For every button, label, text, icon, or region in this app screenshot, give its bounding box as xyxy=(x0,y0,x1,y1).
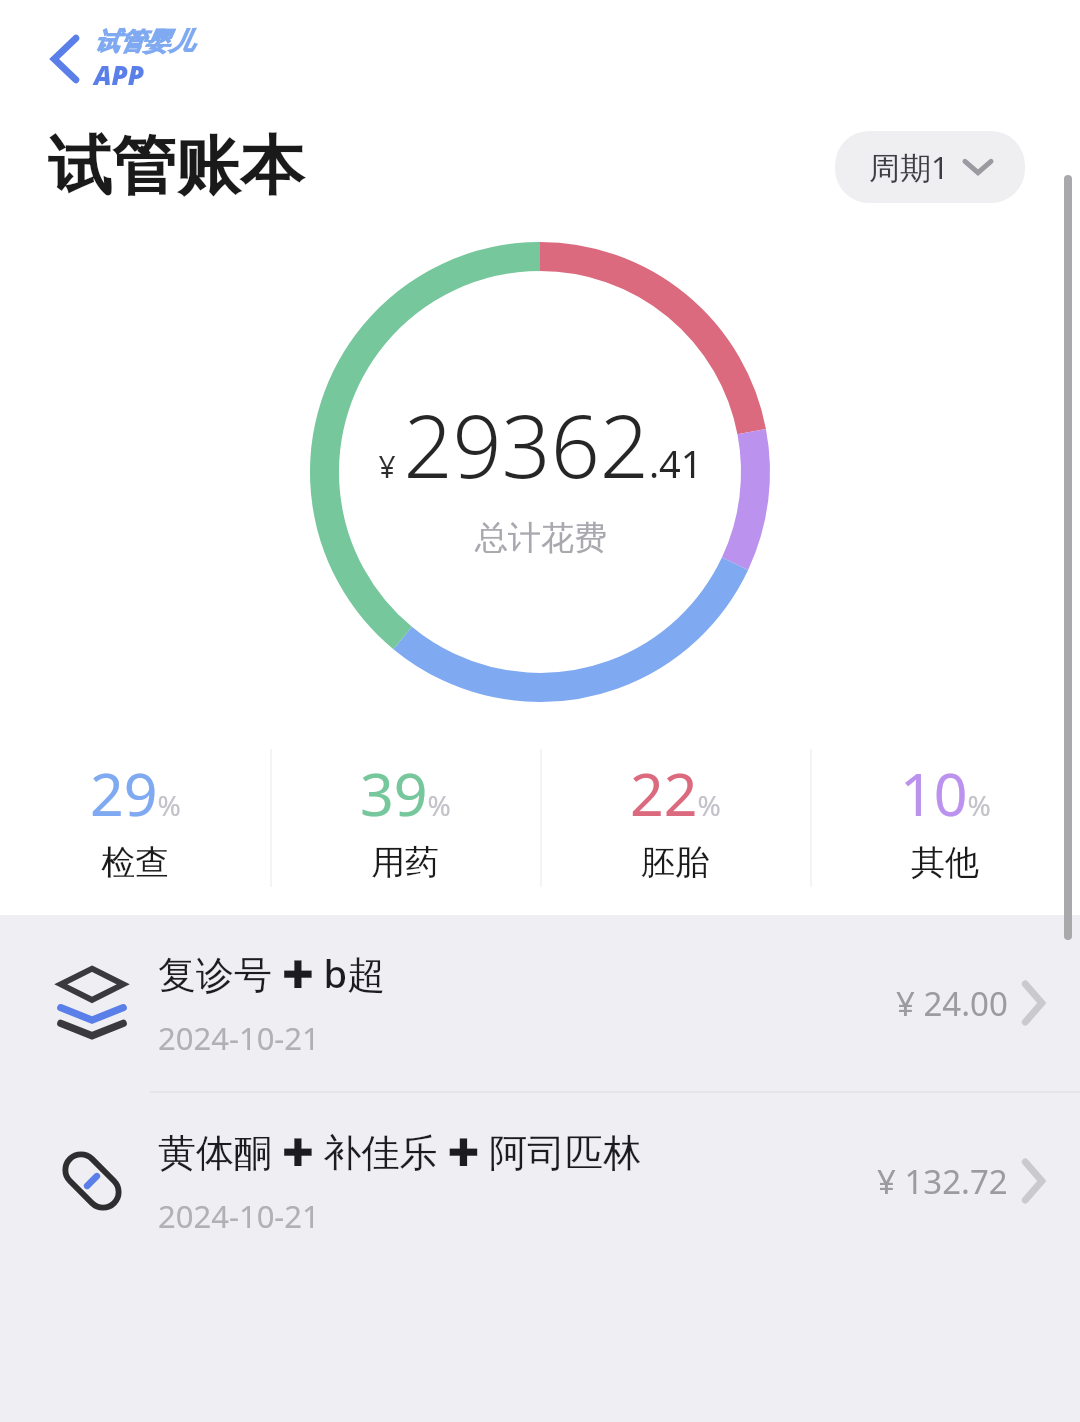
staticText: 周期1 xyxy=(869,146,949,188)
staticText: 试管婴儿 xyxy=(94,26,194,57)
staticText: ¥ 132.72 xyxy=(877,1159,1008,1204)
staticText: 检查 xyxy=(101,841,169,884)
staticText: 22% xyxy=(630,753,721,833)
staticText: 39% xyxy=(360,753,451,833)
staticText: 其他 xyxy=(911,841,979,884)
staticText: 胚胎 xyxy=(641,841,709,884)
staticText: ¥ 29362.41 xyxy=(378,386,703,503)
button[interactable]: 22% xyxy=(540,743,810,893)
button[interactable]: 黄体酮 ✚ 补佳乐 ✚ 阿司匹林 xyxy=(0,1093,1080,1269)
staticText: 黄体酮 ✚ 补佳乐 ✚ 阿司匹林 xyxy=(158,1125,642,1177)
staticText: 用药 xyxy=(371,841,439,884)
button[interactable]: 周期1 xyxy=(835,131,1025,203)
staticText: 试管账本 xyxy=(48,126,304,207)
staticText: ¥ 24.00 xyxy=(896,981,1008,1026)
button[interactable]: 复诊号 ✚ b超 xyxy=(0,915,1080,1091)
button[interactable]: 39% xyxy=(270,743,540,893)
staticText: 2024-10-21 xyxy=(158,1195,320,1237)
button[interactable]: 10% xyxy=(810,743,1080,893)
staticText: 2024-10-21 xyxy=(158,1017,320,1059)
staticText: 29% xyxy=(90,753,181,833)
staticText: APP xyxy=(94,57,144,92)
staticText: 总计花费 xyxy=(475,517,607,559)
button[interactable]: 29% xyxy=(0,743,270,893)
staticText: 复诊号 ✚ b超 xyxy=(158,947,386,999)
button[interactable]: Back xyxy=(48,26,194,92)
staticText: 10% xyxy=(900,753,991,833)
